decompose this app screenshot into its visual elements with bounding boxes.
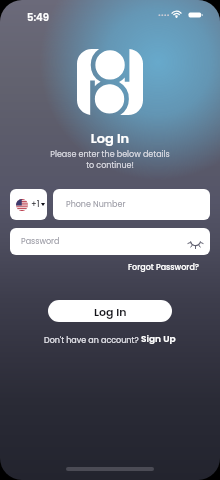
button[interactable]: Forgot Password? (126, 261, 202, 274)
staticText: Log In (94, 304, 127, 319)
button[interactable]: Select country code (10, 189, 47, 220)
staticText: Password (21, 236, 60, 247)
button[interactable]: Sign Up (141, 333, 176, 346)
staticText: Phone Number (66, 199, 126, 210)
staticText: Please enter the below details to contin… (0, 149, 220, 171)
staticText: +1 (31, 199, 40, 210)
staticText: Forgot Password? (128, 262, 200, 273)
button[interactable]: Log In (48, 300, 172, 322)
staticText: Log In (0, 129, 220, 147)
button[interactable]: Show password (188, 235, 202, 249)
staticText: Don't have an account? (44, 335, 141, 346)
button[interactable]: Phone Number (53, 189, 210, 220)
button[interactable]: Password (10, 228, 210, 255)
staticText: 5:49 (27, 10, 49, 24)
